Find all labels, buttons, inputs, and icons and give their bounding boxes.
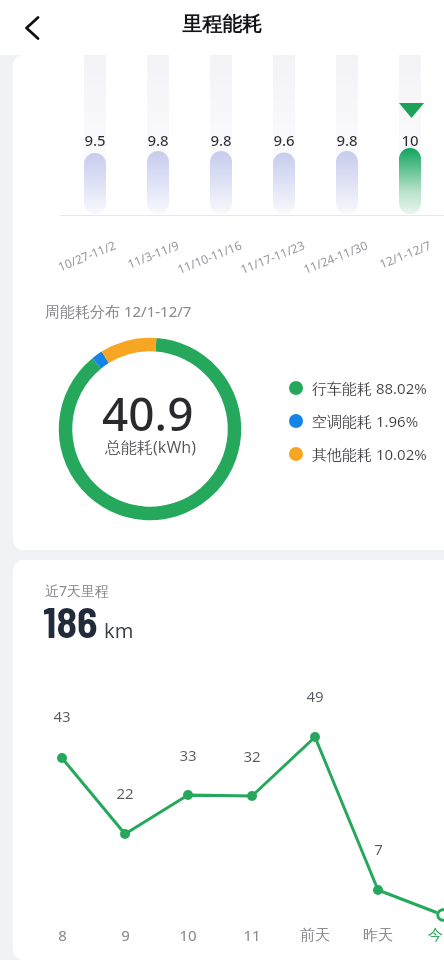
staticText: 11/10-11/16: [175, 237, 244, 277]
staticText: 行车能耗 88.02%: [312, 378, 427, 398]
staticText: 22: [116, 783, 134, 803]
staticText: 总能耗(kWh): [105, 436, 196, 458]
staticText: 7: [374, 839, 383, 859]
staticText: 33: [179, 745, 197, 765]
staticText: 11/24-11/30: [301, 237, 370, 277]
staticText: 今天: [428, 926, 444, 945]
staticText: 里程能耗: [182, 12, 262, 37]
staticText: 10: [179, 925, 197, 945]
staticText: 9.8: [210, 130, 232, 150]
staticText: 前天: [300, 926, 330, 945]
staticText: 11/3-11/9: [125, 237, 181, 272]
staticText: 49: [306, 686, 324, 706]
staticText: 43: [53, 706, 71, 726]
staticText: 空调能耗 1.96%: [312, 411, 419, 431]
staticText: 11/17-11/23: [238, 237, 307, 277]
staticText: 12/1-12/7: [377, 237, 433, 272]
staticText: 32: [243, 746, 261, 766]
staticText: km: [104, 617, 134, 644]
staticText: 9.8: [336, 130, 358, 150]
staticText: 其他能耗 10.02%: [312, 444, 427, 464]
staticText: 8: [58, 925, 67, 945]
staticText: 10/27-11/2: [55, 237, 118, 274]
staticText: 11: [243, 925, 261, 945]
staticText: 9.8: [147, 130, 169, 150]
staticText: 40.9: [102, 382, 194, 434]
staticText: 9: [121, 925, 130, 945]
staticText: 周能耗分布 12/1-12/7: [45, 301, 192, 321]
staticText: 10: [401, 130, 419, 150]
staticText: 近7天里程: [45, 581, 110, 600]
button[interactable]: [12, 8, 52, 48]
staticText: 9.5: [84, 130, 106, 150]
staticText: 9.6: [273, 130, 295, 150]
staticText: 昨天: [363, 926, 393, 945]
staticText: 186: [43, 596, 98, 646]
